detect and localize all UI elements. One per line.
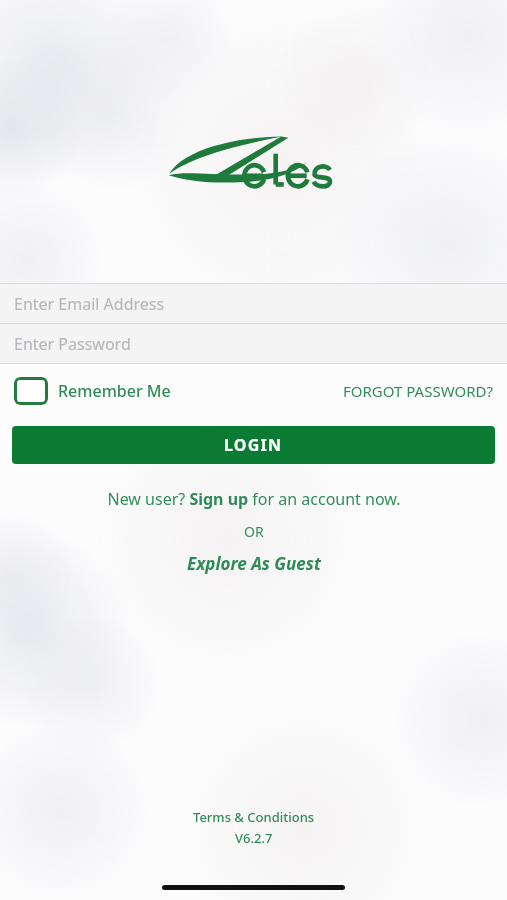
staticText: Explore As Guest [187, 552, 321, 575]
staticText: OR [244, 522, 264, 541]
button[interactable]: Enter Email Address [0, 283, 507, 324]
button[interactable]: Enter Password [0, 324, 507, 364]
button[interactable]: Remember Me [14, 377, 171, 405]
button[interactable]: FORGOT PASSWORD? [343, 381, 493, 401]
staticText: Remember Me [58, 380, 171, 402]
staticText: V6.2.7 [235, 829, 273, 847]
staticText: Enter Password [14, 333, 131, 355]
staticText: LOGIN [224, 434, 283, 456]
button[interactable]: Explore As Guest [0, 552, 507, 575]
staticText: Terms & Conditions [193, 808, 315, 826]
staticText: Enter Email Address [14, 293, 165, 315]
button[interactable]: Terms & Conditions [193, 808, 315, 826]
button[interactable]: New user? Sign up for an account now. [0, 488, 507, 510]
staticText: New user? Sign up for an account now. [107, 488, 401, 510]
button[interactable]: LOGIN [12, 426, 495, 464]
staticText: FORGOT PASSWORD? [343, 381, 493, 401]
other: Zeles logo [166, 133, 342, 195]
